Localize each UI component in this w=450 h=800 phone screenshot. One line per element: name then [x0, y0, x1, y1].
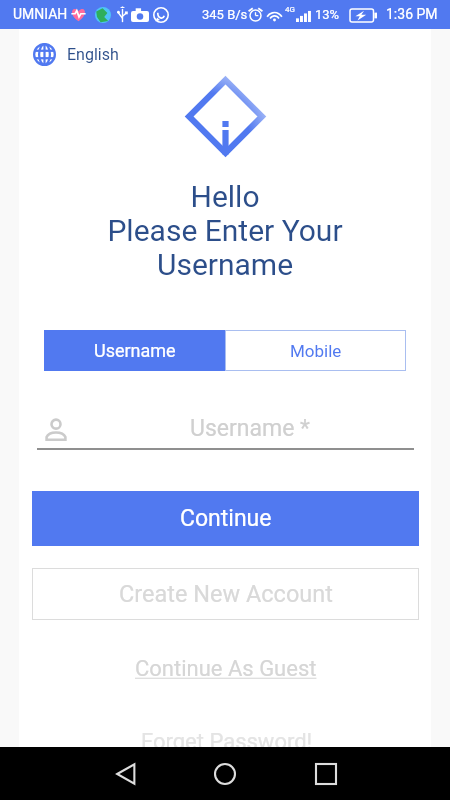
- staticText: 13%: [315, 7, 340, 22]
- button[interactable]: Mobile: [225, 330, 406, 371]
- staticText: 345 B/s: [202, 7, 248, 22]
- button[interactable]: Recent apps: [304, 752, 348, 796]
- staticText: Forget Password!: [141, 729, 313, 755]
- button[interactable]: English: [33, 43, 119, 66]
- staticText: Username *: [190, 415, 310, 442]
- button[interactable]: Continue: [32, 491, 419, 546]
- staticText: Create New Account: [119, 580, 333, 608]
- staticText: 1:36 PM: [386, 6, 438, 22]
- staticText: Hello Please Enter Your Username: [0, 179, 450, 282]
- button[interactable]: Username: [44, 330, 225, 371]
- button[interactable]: Forget Password!: [141, 729, 313, 755]
- staticText: Username: [94, 340, 176, 361]
- staticText: UMNIAH: [13, 6, 68, 22]
- staticText: 4G: [285, 5, 295, 14]
- staticText: English: [67, 45, 119, 64]
- staticText: Continue: [180, 505, 272, 532]
- button[interactable]: Continue As Guest: [135, 656, 317, 682]
- staticText: Continue As Guest: [135, 656, 317, 682]
- button[interactable]: Home: [203, 752, 247, 796]
- button[interactable]: Back: [104, 752, 148, 796]
- staticText: Mobile: [290, 341, 342, 361]
- button[interactable]: Create New Account: [32, 568, 419, 620]
